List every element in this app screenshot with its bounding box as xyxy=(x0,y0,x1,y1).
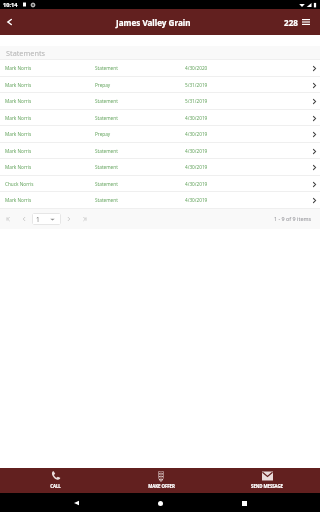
staticText: Statement xyxy=(95,181,118,187)
staticText: Mark Norris xyxy=(5,82,32,88)
staticText: CALL xyxy=(50,483,61,489)
staticText: Statement xyxy=(95,164,118,170)
staticText: Statement xyxy=(95,98,118,104)
staticText: 4/30/2019 xyxy=(185,197,208,203)
staticText: Mark Norris xyxy=(5,98,32,104)
staticText: SEND MESSAGE xyxy=(251,483,283,489)
staticText: Mark Norris xyxy=(5,115,32,121)
button[interactable]: MAKE OFFER xyxy=(108,468,214,493)
staticText: 5/31/2019 xyxy=(185,98,208,104)
staticText: 228 xyxy=(284,17,298,28)
button[interactable]: First page xyxy=(0,210,16,228)
staticText: 4/30/2019 xyxy=(185,181,208,187)
staticText: 4/30/2019 xyxy=(185,148,208,154)
staticText: Chuck Norris xyxy=(5,181,34,187)
button[interactable]: Mark Norris xyxy=(0,158,320,175)
staticText: Mark Norris xyxy=(5,65,32,71)
button[interactable]: Menu xyxy=(300,16,312,28)
staticText: Prepay xyxy=(95,131,111,137)
staticText: Mark Norris xyxy=(5,197,32,203)
button[interactable]: Mark Norris xyxy=(0,191,320,208)
button[interactable]: Back xyxy=(68,495,84,511)
staticText: Prepay xyxy=(95,82,111,88)
button[interactable]: Mark Norris xyxy=(0,92,320,109)
button[interactable]: Mark Norris xyxy=(0,76,320,93)
button[interactable]: Last page xyxy=(77,210,93,228)
staticText: Statement xyxy=(95,115,118,121)
button[interactable]: 1 xyxy=(32,213,61,225)
staticText: Mark Norris xyxy=(5,148,32,154)
button[interactable]: Next page xyxy=(61,210,77,228)
staticText: 4/30/2020 xyxy=(185,65,208,71)
staticText: 4/30/2019 xyxy=(185,115,208,121)
staticText: 4/30/2019 xyxy=(185,164,208,170)
staticText: 1 - 9 of 9 items xyxy=(274,215,312,222)
staticText: 4/30/2019 xyxy=(185,131,208,137)
button[interactable]: Chuck Norris xyxy=(0,175,320,192)
button[interactable]: CALL xyxy=(3,468,108,493)
staticText: James Valley Grain xyxy=(116,17,191,28)
button[interactable]: SEND MESSAGE xyxy=(214,468,320,493)
button[interactable]: Mark Norris xyxy=(0,142,320,159)
button[interactable]: Mark Norris xyxy=(0,59,320,76)
staticText: Statement xyxy=(95,65,118,71)
staticText: Statements xyxy=(6,48,46,58)
button[interactable]: Mark Norris xyxy=(0,125,320,142)
staticText: 1 xyxy=(36,215,40,224)
button[interactable]: Previous page xyxy=(16,210,32,228)
staticText: Mark Norris xyxy=(5,131,32,137)
staticText: 10:14 xyxy=(3,1,18,9)
staticText: 5/31/2019 xyxy=(185,82,208,88)
button[interactable]: Mark Norris xyxy=(0,109,320,126)
staticText: Statement xyxy=(95,197,118,203)
button[interactable]: Recents xyxy=(236,495,252,511)
staticText: Statement xyxy=(95,148,118,154)
button[interactable]: Home xyxy=(152,495,168,511)
button[interactable]: Back xyxy=(0,9,18,35)
staticText: Mark Norris xyxy=(5,164,32,170)
staticText: MAKE OFFER xyxy=(148,483,175,489)
